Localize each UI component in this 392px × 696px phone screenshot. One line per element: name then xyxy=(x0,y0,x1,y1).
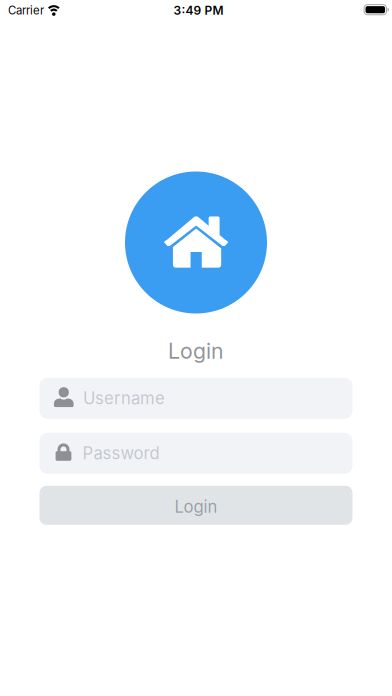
staticText: 3:49 PM xyxy=(173,3,223,18)
button[interactable]: Username xyxy=(39,378,352,419)
staticText: Carrier xyxy=(8,3,44,17)
staticText: Username xyxy=(83,388,165,408)
button[interactable]: Login xyxy=(39,486,352,525)
staticText: Login xyxy=(168,338,224,364)
button[interactable]: Password xyxy=(39,433,352,474)
staticText: Password xyxy=(82,443,159,463)
staticText: Login xyxy=(174,497,217,517)
